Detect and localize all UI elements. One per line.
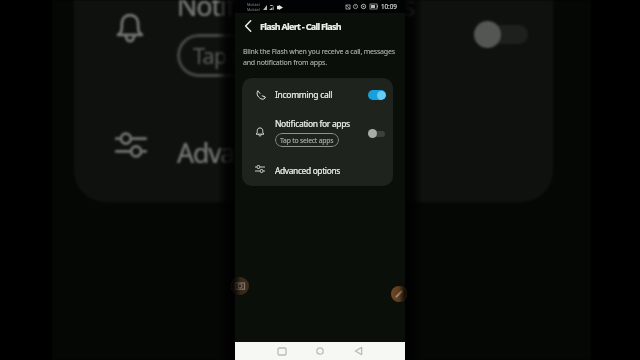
staticText: Mobitel [247, 2, 260, 7]
staticText: Tap to select apps [193, 41, 363, 70]
button[interactable]: Notification for apps, off [368, 129, 385, 138]
button[interactable]: Tap to select apps [177, 34, 379, 77]
button[interactable]: Back [349, 342, 367, 360]
staticText: Advanced options [177, 135, 383, 171]
button[interactable]: Tap to select apps [275, 133, 339, 147]
button[interactable]: Advanced options [242, 155, 393, 186]
button[interactable]: Screenshot [231, 277, 249, 295]
button[interactable]: Notification for apps [242, 111, 393, 155]
button[interactable]: Incomming call [242, 78, 393, 111]
staticText: Tap to select apps [280, 136, 334, 145]
staticText: Notification for apps [177, 0, 414, 24]
staticText: Notification for apps [275, 118, 350, 130]
button[interactable]: Incoming call, on [368, 90, 386, 100]
button[interactable]: Draw [391, 286, 407, 302]
button[interactable]: Back [238, 16, 257, 35]
staticText: Incomming call [275, 89, 333, 101]
staticText: Flash Alert - Call Flash [260, 20, 341, 32]
button[interactable]: Recents [273, 342, 291, 360]
staticText: Mobitel [247, 7, 260, 12]
button[interactable]: Notification for apps, off [474, 20, 528, 49]
staticText: Advanced options [275, 165, 340, 176]
button[interactable]: Advanced options [74, 104, 553, 202]
staticText: 10:09 [381, 2, 397, 11]
button[interactable]: Home [311, 342, 329, 360]
button[interactable]: Notification for apps [74, 0, 553, 104]
staticText: Blink the Flash when you receive a call,… [243, 47, 396, 67]
